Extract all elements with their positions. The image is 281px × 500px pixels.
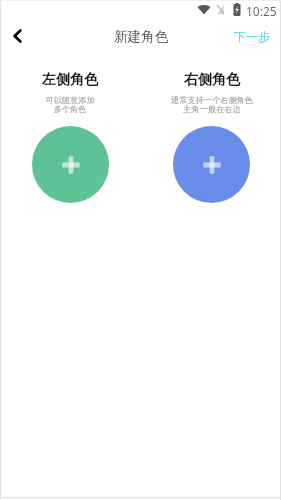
staticText: 可以随意添加 多个角色 bbox=[45, 95, 95, 114]
staticText: 下一步 bbox=[234, 29, 270, 44]
staticText: 右侧角色 bbox=[184, 71, 240, 89]
staticText: 左侧角色 bbox=[42, 71, 98, 89]
staticText: 通常支持一个右侧角色 主角一般在右边 bbox=[171, 95, 253, 114]
button[interactable]: 下一步 bbox=[223, 23, 281, 50]
staticText: 10:25 bbox=[246, 3, 277, 19]
button[interactable]: Add character bbox=[173, 126, 250, 203]
button[interactable]: Back bbox=[0, 20, 33, 52]
button[interactable]: Add character bbox=[32, 126, 109, 203]
staticText: 新建角色 bbox=[114, 28, 168, 45]
